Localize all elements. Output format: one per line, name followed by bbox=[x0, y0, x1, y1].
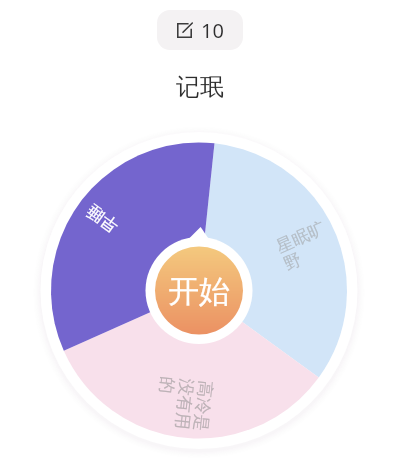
staticText: 星眠旷野 bbox=[273, 217, 337, 275]
other: Edit list bbox=[177, 23, 192, 38]
button[interactable]: 开始 bbox=[155, 247, 243, 335]
staticText: 开始 bbox=[168, 272, 230, 311]
staticText: 10 bbox=[201, 17, 224, 44]
staticText: 记珉 bbox=[176, 72, 224, 102]
staticText: 高冷是没有用的 bbox=[152, 376, 216, 433]
staticText: 早睡 bbox=[82, 200, 122, 237]
button[interactable]: Edit list bbox=[157, 10, 243, 50]
